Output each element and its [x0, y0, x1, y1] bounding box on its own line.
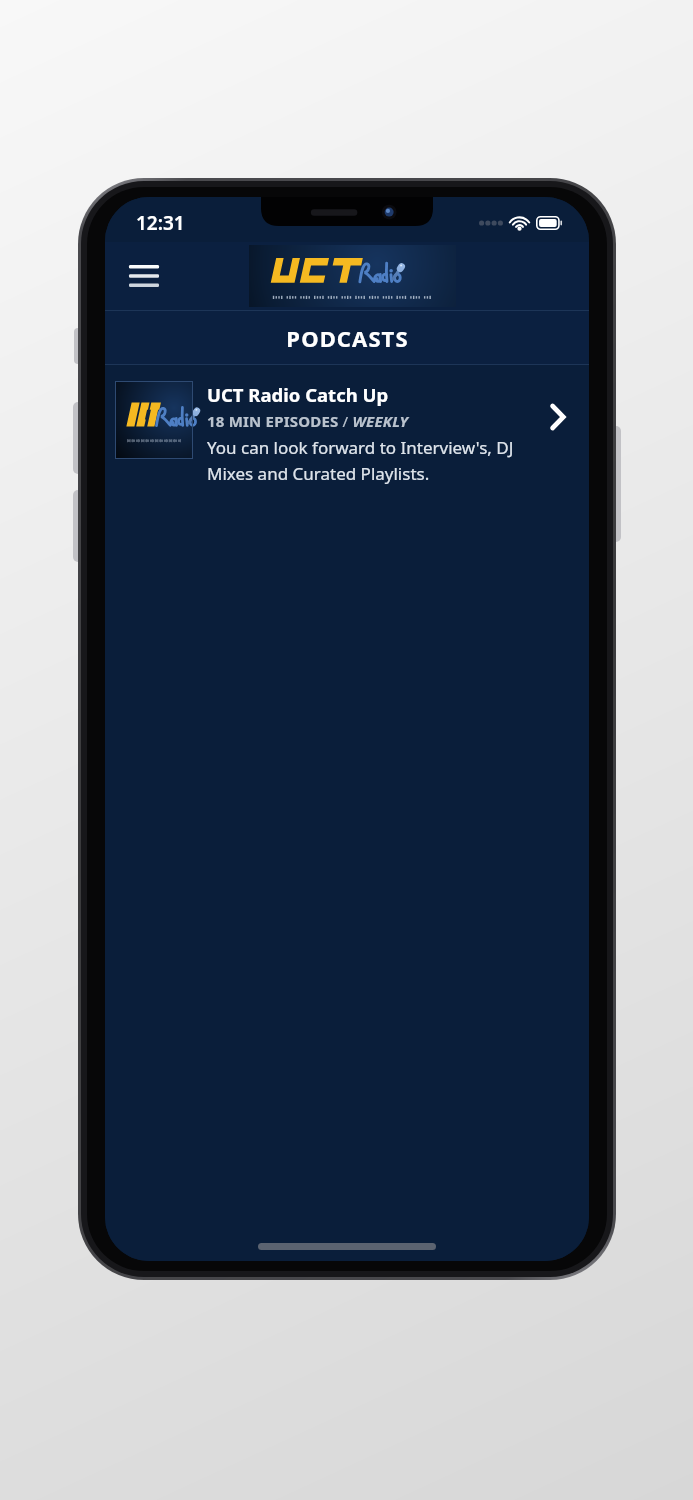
staticText: PODCASTS — [286, 323, 409, 353]
button[interactable]: UCT Radio home — [249, 245, 456, 307]
staticText: UCT Radio Catch Up — [207, 382, 389, 407]
button[interactable]: Open navigation menu — [117, 249, 171, 303]
staticText: You can look forward to Interview's, DJ … — [207, 436, 539, 485]
staticText: 12:31 — [136, 210, 185, 236]
staticText: 18 MIN EPISODES / WEEKLY — [207, 411, 409, 431]
button[interactable]: Open UCT Radio Catch Up — [539, 399, 575, 435]
button[interactable]: UCT Radio Catch Up — [105, 365, 589, 503]
